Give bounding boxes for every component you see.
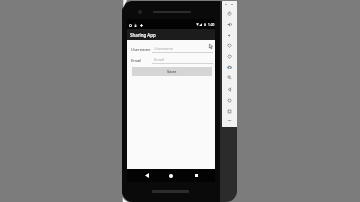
staticText: Email xyxy=(131,58,142,63)
button[interactable]: Home xyxy=(222,95,237,106)
button[interactable]: Take screenshot xyxy=(222,62,237,73)
button[interactable]: Power xyxy=(222,8,237,19)
button[interactable]: Zoom xyxy=(222,72,237,83)
button[interactable]: Overview xyxy=(222,106,237,117)
staticText: Save xyxy=(167,69,177,75)
staticText: 1:20 xyxy=(208,23,215,27)
button[interactable]: Back xyxy=(222,84,237,95)
staticText: Sharing App xyxy=(130,32,156,38)
button[interactable]: Volume down xyxy=(222,30,237,41)
button[interactable]: Recent apps xyxy=(189,169,203,182)
button[interactable]: Rotate right xyxy=(222,51,237,62)
button[interactable]: Home xyxy=(164,169,178,182)
button[interactable]: More xyxy=(222,115,237,126)
button[interactable]: Save xyxy=(132,67,212,76)
staticText: Email xyxy=(154,57,165,62)
button[interactable]: Back xyxy=(140,169,154,182)
button[interactable]: Volume up xyxy=(222,19,237,30)
staticText: Username xyxy=(131,47,151,52)
staticText: Username xyxy=(154,46,174,51)
button[interactable]: Rotate left xyxy=(222,40,237,51)
